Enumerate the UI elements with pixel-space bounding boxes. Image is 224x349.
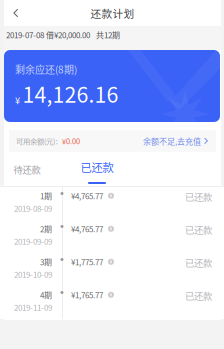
- staticText: 已还款: [185, 223, 212, 236]
- staticText: 4期: [40, 289, 52, 301]
- staticText: 2019-07-08 借¥20,000.00: [6, 29, 90, 41]
- staticText: 2019-10-09: [14, 269, 52, 280]
- staticText: 可用余额(元)：: [16, 136, 62, 146]
- staticText: ¥4,765.77: [71, 223, 103, 235]
- button[interactable]: 返回: [3, 0, 29, 26]
- staticText: ¥1,765.77: [71, 289, 103, 301]
- staticText: 已还款: [185, 190, 212, 203]
- staticText: 1期: [40, 190, 52, 202]
- staticText: 余额不足,去充值: [143, 135, 201, 147]
- staticText: 还款计划: [90, 5, 134, 21]
- button[interactable]: 3期: [0, 253, 224, 286]
- staticText: 2期: [40, 223, 52, 235]
- staticText: 已还款: [80, 159, 113, 175]
- staticText: ¥4,765.77: [71, 190, 103, 202]
- staticText: 2019-08-09: [14, 203, 52, 214]
- button[interactable]: 4期: [0, 286, 224, 319]
- staticText: ¥: [15, 93, 20, 107]
- button[interactable]: 待还款: [0, 153, 54, 186]
- button[interactable]: 1期: [0, 187, 224, 220]
- staticText: ¥0.00: [62, 136, 80, 146]
- staticText: 剩余应还(8期): [15, 62, 77, 76]
- staticText: 待还款: [13, 163, 40, 176]
- staticText: 14,126.16: [22, 78, 118, 109]
- staticText: 3期: [40, 256, 52, 268]
- staticText: 2019-11-09: [14, 302, 52, 313]
- staticText: 共12期: [90, 29, 120, 41]
- button[interactable]: 2期: [0, 220, 224, 253]
- staticText: 已还款: [185, 256, 212, 269]
- button[interactable]: 余额不足,去充值: [143, 135, 208, 147]
- staticText: ¥1,775.77: [71, 256, 103, 268]
- staticText: 已还款: [185, 289, 212, 302]
- button[interactable]: 已还款: [70, 153, 124, 186]
- staticText: 2019-09-09: [14, 236, 52, 247]
